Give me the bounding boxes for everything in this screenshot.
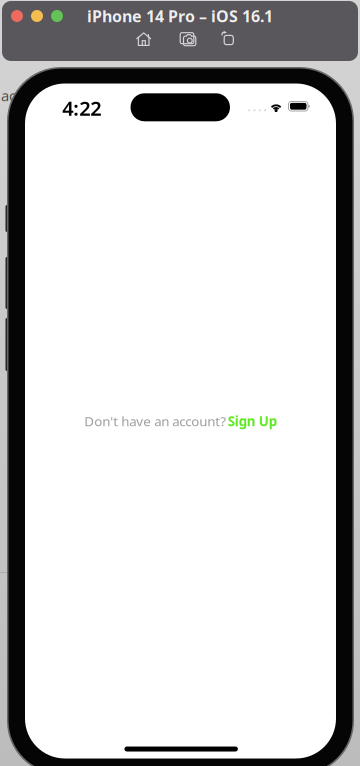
button[interactable]: Zoom [51,10,63,22]
button[interactable]: Rotate [214,24,241,53]
staticText: Back [0,86,24,105]
staticText: Don't have an account? [84,412,226,430]
button[interactable]: Minimise [31,10,43,22]
staticText: iPhone 14 Pro – iOS 16.1 [87,5,273,27]
staticText: 4:22 [62,95,101,121]
button[interactable]: Sign Up [228,412,277,430]
button[interactable]: Home [129,25,159,53]
staticText: Sign Up [228,412,277,430]
button[interactable]: Close [11,10,23,22]
button[interactable]: Screenshot [173,25,204,53]
